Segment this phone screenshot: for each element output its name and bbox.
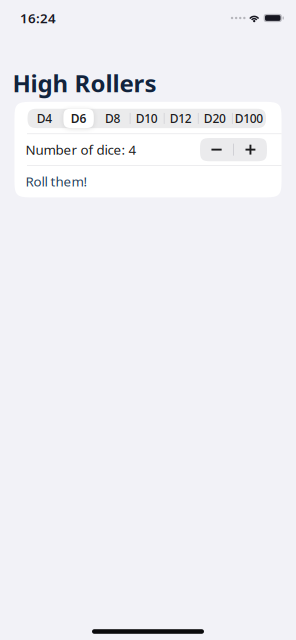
button[interactable]: Roll them! bbox=[14, 166, 281, 197]
staticText: D8 bbox=[105, 110, 120, 126]
button[interactable]: Decrease bbox=[200, 138, 233, 161]
button[interactable]: D6 bbox=[62, 109, 96, 128]
staticText: D6 bbox=[71, 110, 86, 126]
staticText: 16:24 bbox=[20, 9, 56, 27]
button[interactable]: D4 bbox=[27, 109, 62, 128]
staticText: High Rollers bbox=[12, 67, 156, 99]
staticText: D10 bbox=[136, 110, 158, 126]
staticText: D12 bbox=[170, 110, 192, 126]
button[interactable]: D20 bbox=[198, 109, 232, 128]
staticText: D4 bbox=[37, 110, 52, 126]
button[interactable]: D10 bbox=[130, 109, 164, 128]
staticText: Roll them! bbox=[25, 172, 87, 190]
staticText: D100 bbox=[235, 110, 263, 126]
button[interactable]: D8 bbox=[96, 109, 130, 128]
button[interactable]: Increase bbox=[234, 138, 267, 161]
button[interactable]: D100 bbox=[232, 109, 266, 128]
staticText: D20 bbox=[204, 110, 226, 126]
button[interactable]: D12 bbox=[164, 109, 198, 128]
staticText: Number of dice: 4 bbox=[25, 141, 136, 158]
